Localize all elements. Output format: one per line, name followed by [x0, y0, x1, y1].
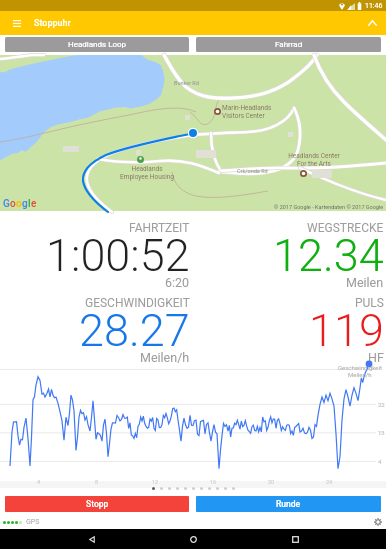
staticText: PULS: [355, 296, 384, 310]
staticText: Meilen: [346, 275, 384, 290]
staticText: 8: [95, 479, 99, 485]
staticText: FAHRTZEIT: [129, 221, 190, 235]
button[interactable]: WEGSTRECKE: [194, 212, 384, 286]
staticText: HF: [368, 350, 384, 365]
staticText: 6:20: [165, 275, 190, 290]
staticText: 12.34: [273, 229, 384, 282]
staticText: G: [3, 198, 10, 210]
button[interactable]: Menu: [5, 11, 29, 35]
staticText: © 2017 Google - Kartendaten © 2017 Googl…: [274, 204, 384, 210]
staticText: 20: [268, 479, 275, 485]
staticText: Crk/onda Rd: [237, 168, 268, 174]
staticText: 1:00:52: [46, 229, 190, 282]
button[interactable]: Stopp: [5, 496, 189, 512]
button[interactable]: Runde: [196, 496, 381, 512]
staticText: 24: [326, 479, 333, 485]
staticText: Runde: [276, 499, 301, 509]
staticText: GESCHWINDIGKEIT: [85, 296, 190, 310]
staticText: Geschwindigkeit: [338, 364, 382, 371]
staticText: Headlands Center For the Arts: [288, 152, 340, 168]
button[interactable]: Fahrrad: [196, 37, 381, 52]
button[interactable]: Back: [82, 529, 102, 549]
staticText: l: [28, 198, 31, 210]
button[interactable]: PULS: [194, 287, 384, 361]
button[interactable]: FAHRTZEIT: [0, 212, 190, 286]
staticText: 28.27: [79, 304, 190, 357]
staticText: Stopp: [86, 499, 109, 509]
staticText: Fahrrad: [275, 40, 303, 49]
button[interactable]: Headlands Loop: [5, 37, 189, 52]
staticText: WEGSTRECKE: [307, 221, 384, 235]
staticText: Headlands Loop: [68, 40, 127, 49]
staticText: Meilen/h: [348, 371, 372, 378]
button[interactable]: GESCHWINDIGKEIT: [0, 287, 190, 361]
button[interactable]: Collapse: [361, 12, 383, 34]
staticText: o: [10, 198, 16, 210]
staticText: e: [31, 198, 37, 210]
button[interactable]: Recents: [285, 529, 305, 549]
staticText: GPS: [26, 518, 40, 526]
staticText: Bunker Rd: [174, 80, 199, 86]
staticText: 16: [210, 479, 217, 485]
staticText: 22: [378, 401, 385, 408]
staticText: o: [16, 198, 22, 210]
staticText: 13: [378, 429, 385, 436]
staticText: 12: [152, 479, 159, 485]
button[interactable]: Home: [183, 529, 203, 549]
staticText: Meilen/h: [140, 350, 190, 365]
staticText: 11:46: [365, 2, 383, 10]
staticText: Stoppuhr: [34, 18, 71, 29]
staticText: g: [22, 198, 28, 210]
staticText: 119: [309, 304, 384, 357]
staticText: Marin-Headlands Visitors Center: [222, 104, 272, 120]
staticText: 4: [37, 479, 41, 485]
staticText: Headlands Employee Housing: [120, 165, 174, 181]
staticText: 4: [378, 458, 382, 465]
button[interactable]: Settings: [372, 516, 383, 527]
